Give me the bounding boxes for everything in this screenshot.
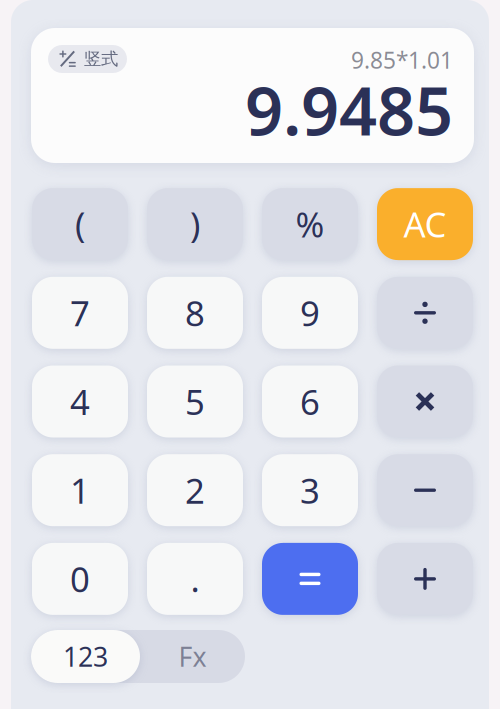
button[interactable]: Vertical calculation: [48, 45, 127, 73]
button[interactable]: 4: [32, 365, 128, 437]
button[interactable]: 9: [262, 277, 358, 349]
staticText: 9: [300, 290, 320, 336]
button[interactable]: 123: [31, 630, 140, 683]
button[interactable]: Equals: [262, 543, 358, 615]
staticText: 8: [185, 290, 205, 336]
button[interactable]: Multiply: [377, 365, 473, 437]
staticText: ): [190, 201, 200, 247]
staticText: 4: [70, 378, 90, 424]
staticText: .: [190, 556, 199, 602]
staticText: 9.85*1.01: [351, 45, 453, 75]
button[interactable]: Divide: [377, 277, 473, 349]
staticText: AC: [403, 201, 446, 247]
staticText: 123: [63, 639, 108, 674]
staticText: 9.9485: [245, 65, 453, 154]
button[interactable]: 7: [32, 277, 128, 349]
button[interactable]: 3: [262, 454, 358, 526]
button[interactable]: Percent: [262, 188, 358, 260]
staticText: 3: [300, 467, 320, 513]
button[interactable]: Plus: [377, 543, 473, 615]
staticText: %: [295, 201, 324, 247]
button[interactable]: Decimal point: [147, 543, 243, 615]
button[interactable]: All clear: [377, 188, 473, 260]
button[interactable]: 2: [147, 454, 243, 526]
staticText: 1: [70, 467, 90, 513]
staticText: 6: [300, 378, 320, 424]
staticText: 竖式: [84, 48, 118, 70]
button[interactable]: 1: [32, 454, 128, 526]
staticText: 0: [70, 556, 90, 602]
staticText: 2: [185, 467, 205, 513]
button[interactable]: 8: [147, 277, 243, 349]
staticText: (: [75, 201, 85, 247]
button[interactable]: Minus: [377, 454, 473, 526]
button[interactable]: 5: [147, 365, 243, 437]
staticText: 7: [70, 290, 90, 336]
button[interactable]: 6: [262, 365, 358, 437]
staticText: Fx: [178, 639, 206, 674]
staticText: 5: [185, 378, 205, 424]
button[interactable]: Open parenthesis: [32, 188, 128, 260]
button[interactable]: Close parenthesis: [147, 188, 243, 260]
button[interactable]: 0: [32, 543, 128, 615]
button[interactable]: Fx: [140, 630, 245, 683]
